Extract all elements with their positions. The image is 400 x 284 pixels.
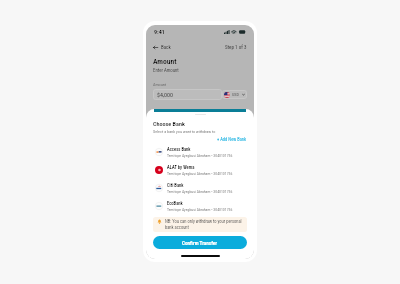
button[interactable]: USD — [222, 90, 247, 99]
staticText: Amount — [153, 82, 166, 87]
button[interactable]: Citi Bank — [153, 179, 247, 197]
staticText: Access Bank — [167, 147, 191, 152]
staticText: Citi Bank — [167, 183, 184, 188]
staticText: $4,000 — [157, 91, 173, 98]
staticText: Select a bank you want to withdraw to — [153, 129, 216, 134]
button[interactable]: $4,000 — [153, 89, 222, 100]
staticText: Temitope Ayegbusi Abraham • 3040101756 — [167, 207, 233, 212]
button[interactable]: Confirm Transfer — [153, 236, 247, 249]
staticText: Temitope Ayegbusi Abraham • 3040101756 — [167, 153, 233, 158]
staticText: ALAT by Wema — [167, 165, 195, 170]
staticText: Choose Bank — [153, 120, 185, 127]
button[interactable]: Access Bank — [153, 143, 247, 161]
staticText: Temitope Ayegbusi Abraham • 3040101756 — [167, 189, 233, 194]
staticText: EcoBank — [167, 201, 183, 206]
staticText: USD — [232, 92, 239, 97]
staticText: Back — [161, 44, 171, 50]
staticText: Step 1 of 3 — [225, 44, 247, 50]
button[interactable]: ALAT by Wema — [153, 161, 247, 179]
staticText: Amount — [153, 57, 177, 66]
button[interactable]: EcoBank — [153, 197, 247, 215]
staticText: Enter Amount — [153, 68, 179, 74]
button[interactable]: + Add New Bank — [217, 137, 247, 142]
button[interactable]: Back — [153, 44, 171, 50]
staticText: 9:41 — [154, 28, 165, 35]
staticText: Temitope Ayegbusi Abraham • 3040101756 — [167, 171, 233, 176]
staticText: NB: You can only withdraw to your person… — [165, 219, 243, 230]
staticText: Confirm Transfer — [182, 240, 218, 246]
